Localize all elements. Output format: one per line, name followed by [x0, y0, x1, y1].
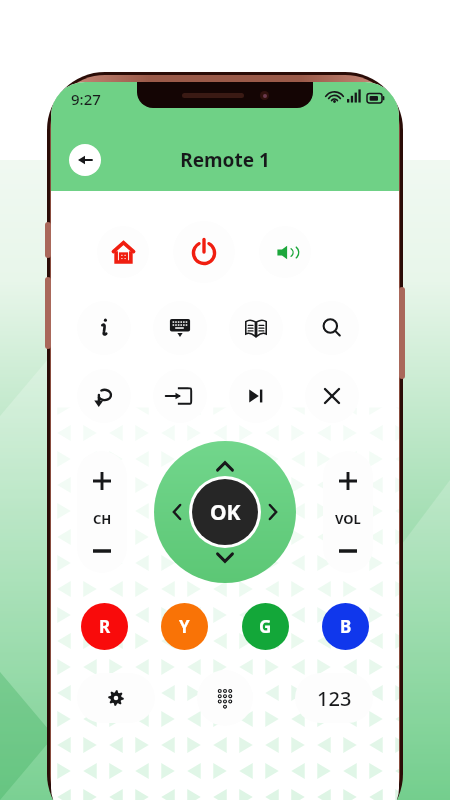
button[interactable]: Mute: [259, 226, 311, 278]
staticText: G: [259, 615, 272, 638]
button[interactable]: CH: [77, 451, 127, 573]
staticText: B: [340, 615, 352, 638]
button[interactable]: Keyboard: [153, 301, 207, 355]
button[interactable]: Info: [77, 301, 131, 355]
button[interactable]: Back: [77, 369, 131, 423]
staticText: Y: [179, 615, 190, 638]
staticText: CH: [93, 510, 112, 528]
button[interactable]: Dialpad: [197, 670, 253, 726]
button[interactable]: VOL: [323, 451, 373, 573]
button[interactable]: R: [81, 603, 128, 650]
staticText: R: [99, 615, 111, 638]
staticText: OK: [210, 498, 241, 527]
button[interactable]: B: [322, 603, 369, 650]
staticText: 9:27: [71, 89, 101, 109]
staticText: Remote 1: [180, 147, 270, 173]
button[interactable]: Y: [161, 603, 208, 650]
button[interactable]: OK: [192, 479, 258, 545]
button[interactable]: Guide: [229, 301, 283, 355]
staticText: VOL: [335, 510, 361, 528]
button[interactable]: Exit: [305, 369, 359, 423]
staticText: 123: [317, 685, 352, 712]
button[interactable]: Settings: [77, 673, 155, 723]
button[interactable]: Power: [173, 221, 235, 283]
button[interactable]: 123: [295, 673, 373, 723]
button[interactable]: Search: [305, 301, 359, 355]
button[interactable]: Next: [229, 369, 283, 423]
button[interactable]: Input source: [153, 369, 207, 423]
button[interactable]: Home: [97, 226, 149, 278]
button[interactable]: G: [242, 603, 289, 650]
button[interactable]: Back: [69, 144, 101, 176]
